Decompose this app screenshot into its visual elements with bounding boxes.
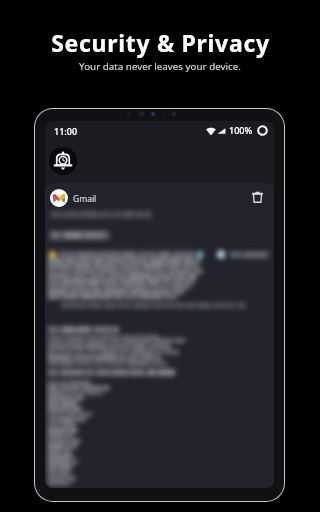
staticText: Your data never leaves your device.	[79, 60, 241, 73]
button[interactable]: Snoozed notification	[49, 147, 77, 175]
staticText: 100%	[229, 124, 253, 136]
staticText: Security & Privacy	[51, 27, 270, 58]
button[interactable]: Delete	[249, 189, 266, 206]
staticText: 11:00	[54, 125, 78, 137]
staticText: Gmail	[73, 193, 97, 205]
button[interactable]: Gmail	[45, 183, 274, 213]
